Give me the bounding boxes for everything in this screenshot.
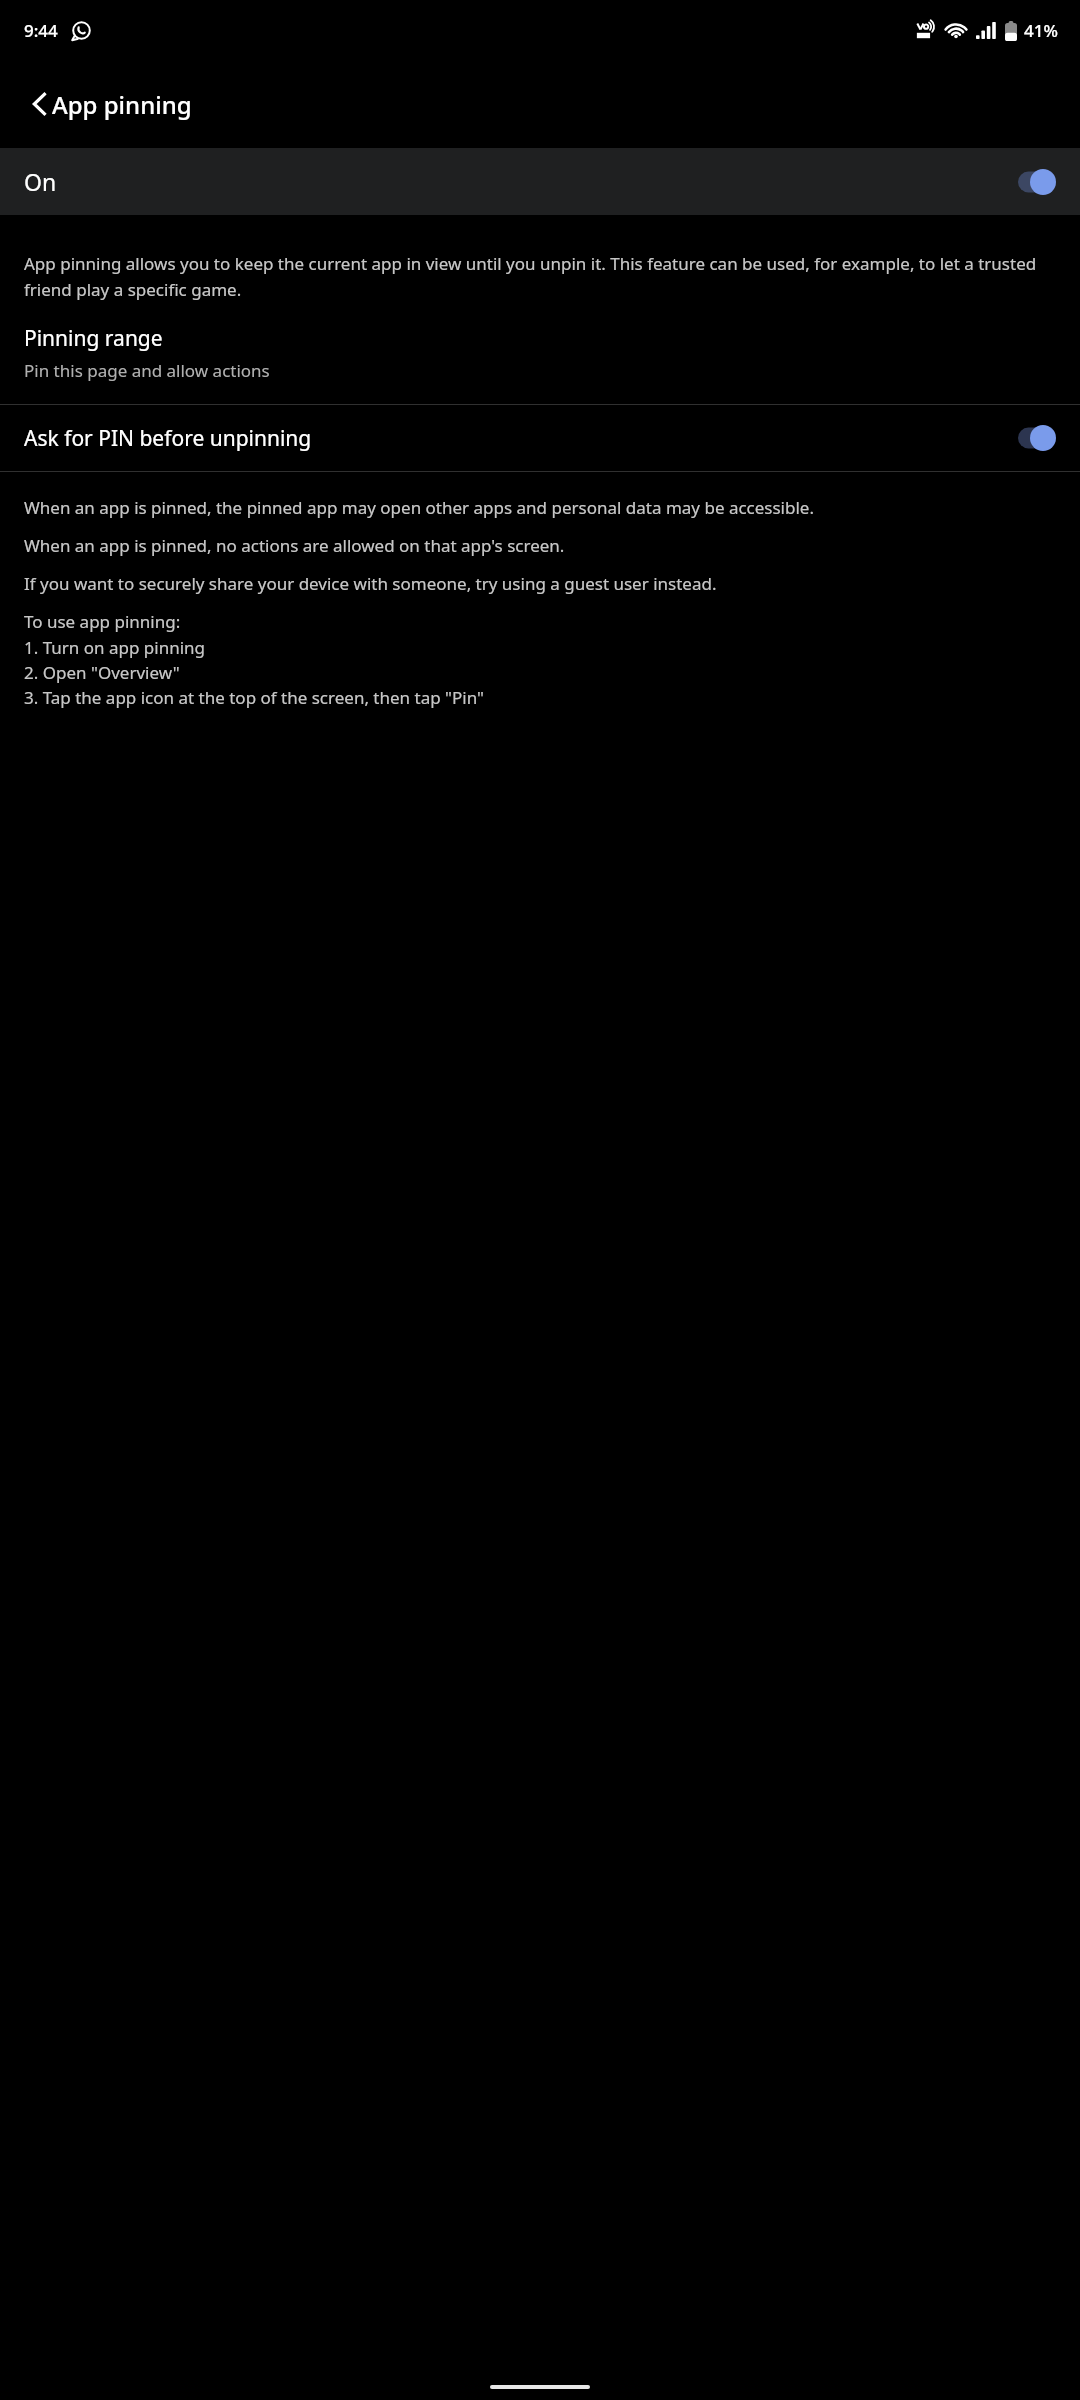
button[interactable]: On bbox=[0, 148, 1080, 215]
staticText: On bbox=[24, 166, 57, 197]
staticText: When an app is pinned, the pinned app ma… bbox=[24, 496, 1060, 519]
staticText: Ask for PIN before unpinning bbox=[24, 424, 312, 453]
staticText: Pinning range bbox=[24, 324, 163, 353]
staticText: Pin this page and allow actions bbox=[24, 359, 270, 382]
staticText: When an app is pinned, no actions are al… bbox=[24, 534, 1060, 557]
staticText: 41% bbox=[1024, 19, 1058, 42]
staticText: To use app pinning: 1. Turn on app pinni… bbox=[24, 610, 1060, 709]
staticText: If you want to securely share your devic… bbox=[24, 572, 1060, 595]
staticText: 9:44 bbox=[24, 19, 58, 42]
staticText: App pinning allows you to keep the curre… bbox=[24, 252, 1060, 301]
button[interactable]: Pinning range bbox=[0, 324, 1080, 382]
staticText: App pinning bbox=[52, 88, 192, 121]
button[interactable]: Back bbox=[14, 78, 66, 130]
button[interactable]: Ask for PIN before unpinning bbox=[0, 405, 1080, 471]
